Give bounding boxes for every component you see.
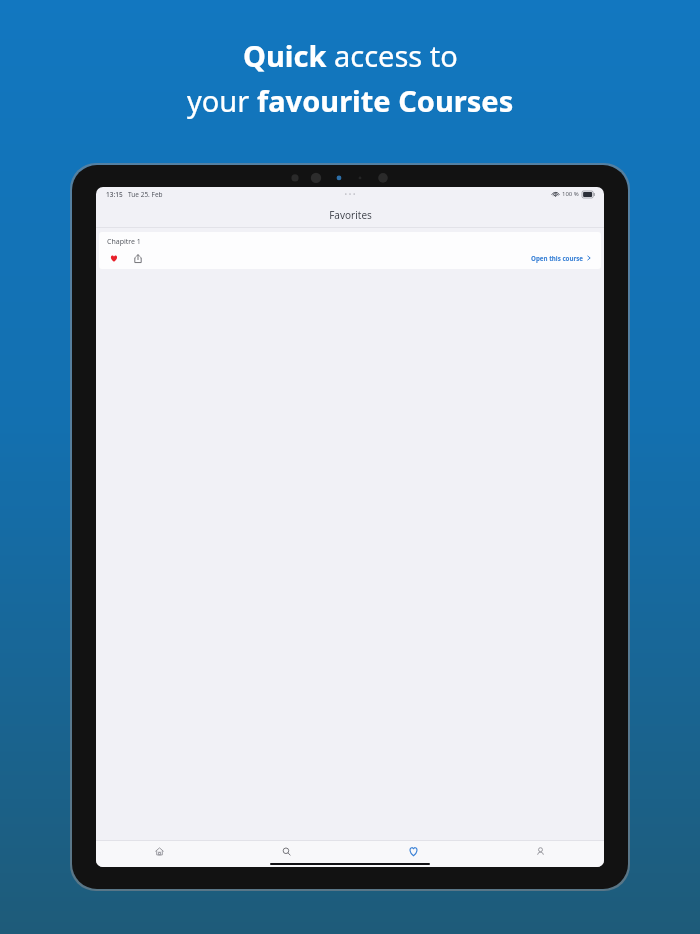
button[interactable]: Remove from favorites bbox=[107, 251, 121, 265]
staticText: favourite Courses bbox=[257, 81, 514, 120]
staticText: Favorites bbox=[329, 208, 372, 222]
button[interactable]: Search bbox=[223, 841, 350, 862]
staticText: access to bbox=[334, 36, 458, 75]
staticText: 13:15 bbox=[106, 190, 123, 199]
button[interactable]: Home bbox=[96, 841, 223, 862]
button[interactable]: Profile bbox=[477, 841, 604, 862]
button[interactable]: Favorites bbox=[350, 841, 477, 862]
staticText: your bbox=[187, 81, 257, 120]
button[interactable]: Chapitre 1 bbox=[99, 232, 601, 269]
staticText: Chapitre 1 bbox=[107, 237, 141, 247]
button[interactable]: Open this course bbox=[529, 252, 593, 264]
staticText: 100 % bbox=[562, 190, 579, 198]
staticText: Quick bbox=[243, 36, 334, 75]
button[interactable]: Share bbox=[131, 251, 145, 265]
staticText: Open this course bbox=[531, 254, 584, 262]
staticText: Tue 25. Feb bbox=[128, 190, 163, 199]
